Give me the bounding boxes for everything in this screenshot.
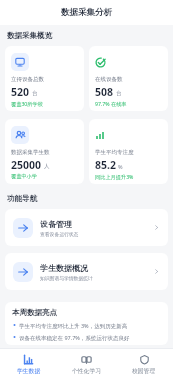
staticText: 学生平均专注度环比上升 3%，达到历史新高 [19, 322, 128, 330]
staticText: 508 [95, 85, 114, 99]
staticText: 覆盖中小学 [11, 173, 37, 180]
staticText: 个性化学习 [72, 367, 101, 374]
button[interactable]: 个性化学习 [57, 349, 115, 378]
button[interactable]: 数据采集学生数 [5, 119, 84, 184]
staticText: 覆盖30所学校 [11, 100, 43, 107]
staticText: 台 [32, 90, 38, 97]
staticText: 在线设备数 [95, 76, 123, 83]
staticText: 97.7% 在线率 [95, 100, 127, 107]
staticText: 85.2 [95, 158, 116, 172]
staticText: 本周数据亮点 [12, 308, 57, 317]
staticText: 25000 [11, 158, 42, 172]
staticText: 学生数据 [17, 367, 41, 374]
button[interactable]: 设备管理 [5, 209, 168, 246]
button[interactable]: 学生平均专注度 [89, 119, 168, 184]
staticText: 立得设备总数 [11, 76, 44, 83]
staticText: 设备在线率稳定在 97.7%，系统运行状态良好 [19, 334, 130, 342]
button[interactable]: 学生数据概况 [5, 253, 168, 290]
staticText: 设备管理 [40, 219, 72, 229]
staticText: 数据采集学生数 [11, 149, 50, 156]
staticText: 同比上月提升3% [95, 173, 134, 180]
button[interactable]: 立得设备总数 [5, 46, 84, 111]
button[interactable]: 学生数据 [0, 349, 57, 378]
staticText: 查看设备运行状态 [40, 231, 79, 237]
staticText: 数据采集概览 [7, 31, 52, 40]
staticText: 人 [44, 163, 50, 170]
button[interactable]: 在线设备数 [89, 46, 168, 111]
staticText: 学生数据概况 [40, 263, 88, 273]
staticText: 校园管理 [132, 367, 156, 374]
button[interactable]: 校园管理 [115, 349, 173, 378]
staticText: 数据采集分析 [61, 7, 112, 18]
staticText: 学生平均专注度 [95, 149, 134, 156]
staticText: 520 [11, 85, 30, 99]
staticText: 台 [116, 90, 122, 97]
staticText: 知识图谱与学情数据统计 [40, 275, 93, 281]
staticText: % [118, 163, 123, 170]
staticText: 功能导航 [7, 194, 37, 203]
